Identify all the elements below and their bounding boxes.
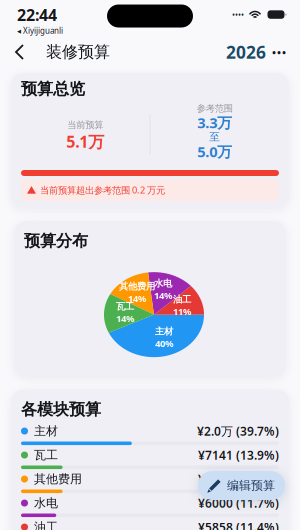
staticText: ¥2.0万 (39.7%) [197, 423, 279, 439]
staticText: 油工 [34, 520, 58, 530]
staticText: 瓦工 [116, 301, 134, 312]
staticText: ◂ Xiyijiguanli [17, 25, 63, 36]
staticText: 油工 [173, 294, 191, 305]
staticText: 参考范围 [197, 103, 233, 114]
staticText: 11% [173, 305, 191, 318]
staticText: 主材 [155, 326, 173, 337]
staticText: 装修预算 [46, 42, 110, 62]
button[interactable]: Back [11, 40, 33, 64]
staticText: 至 [209, 130, 220, 143]
staticText: 编辑预算 [227, 478, 275, 493]
staticText: 其他费用 [34, 472, 82, 486]
staticText: ¥7141 (13.9%) [198, 447, 279, 463]
staticText: ¥5858 (11.4%) [198, 519, 279, 530]
staticText: 当前预算超出参考范围 0.2 万元 [40, 184, 165, 196]
button[interactable]: More options [269, 42, 289, 62]
staticText: ¥6000 (11.7%) [198, 495, 279, 511]
button[interactable]: 2026 [223, 40, 269, 63]
staticText: 14% [116, 312, 134, 325]
staticText: 40% [155, 337, 173, 350]
staticText: 各模块预算 [21, 400, 101, 419]
staticText: 22:44 [17, 4, 57, 25]
staticText: 预算总览 [21, 79, 85, 99]
staticText: •••• [232, 9, 244, 20]
staticText: 水电 [34, 496, 58, 510]
staticText: 14% [128, 292, 146, 305]
staticText: 预算分布 [24, 231, 88, 251]
staticText: 瓦工 [34, 448, 58, 462]
staticText: 5.1万 [66, 131, 104, 152]
staticText: 5.0万 [197, 142, 232, 161]
staticText: 主材 [34, 424, 58, 438]
button[interactable]: 编辑预算 [198, 471, 285, 500]
staticText: 其他费用 [119, 281, 155, 292]
staticText: 2026 [226, 40, 266, 63]
staticText: 当前预算 [67, 119, 103, 131]
staticText: 3.3万 [197, 113, 232, 132]
staticText: 水电 [154, 278, 172, 289]
staticText: 14% [154, 289, 172, 302]
staticText: ••• [271, 43, 286, 61]
staticText: ¥7134 (13.9%) [198, 471, 279, 487]
